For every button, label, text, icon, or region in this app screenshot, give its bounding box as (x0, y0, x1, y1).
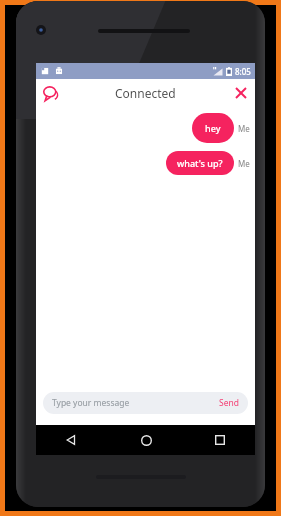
staticText: hey (205, 122, 221, 134)
staticText: Type your message (52, 397, 130, 409)
button[interactable]: Home (135, 429, 157, 451)
staticText: Me (238, 158, 250, 169)
button[interactable]: Close (227, 79, 255, 107)
button[interactable]: Chats (36, 79, 64, 107)
button[interactable]: Type your message (43, 392, 248, 414)
staticText: Me (238, 123, 250, 134)
staticText: Connected (115, 85, 176, 101)
staticText: 8:05 (235, 66, 251, 77)
staticText: Send (219, 397, 239, 409)
staticText: what's up? (177, 157, 223, 169)
button[interactable]: Recents (209, 429, 231, 451)
button[interactable]: hey (192, 113, 250, 143)
button[interactable]: what's up? (166, 151, 250, 175)
button[interactable]: Send (219, 397, 239, 409)
button[interactable]: Back (60, 429, 82, 451)
